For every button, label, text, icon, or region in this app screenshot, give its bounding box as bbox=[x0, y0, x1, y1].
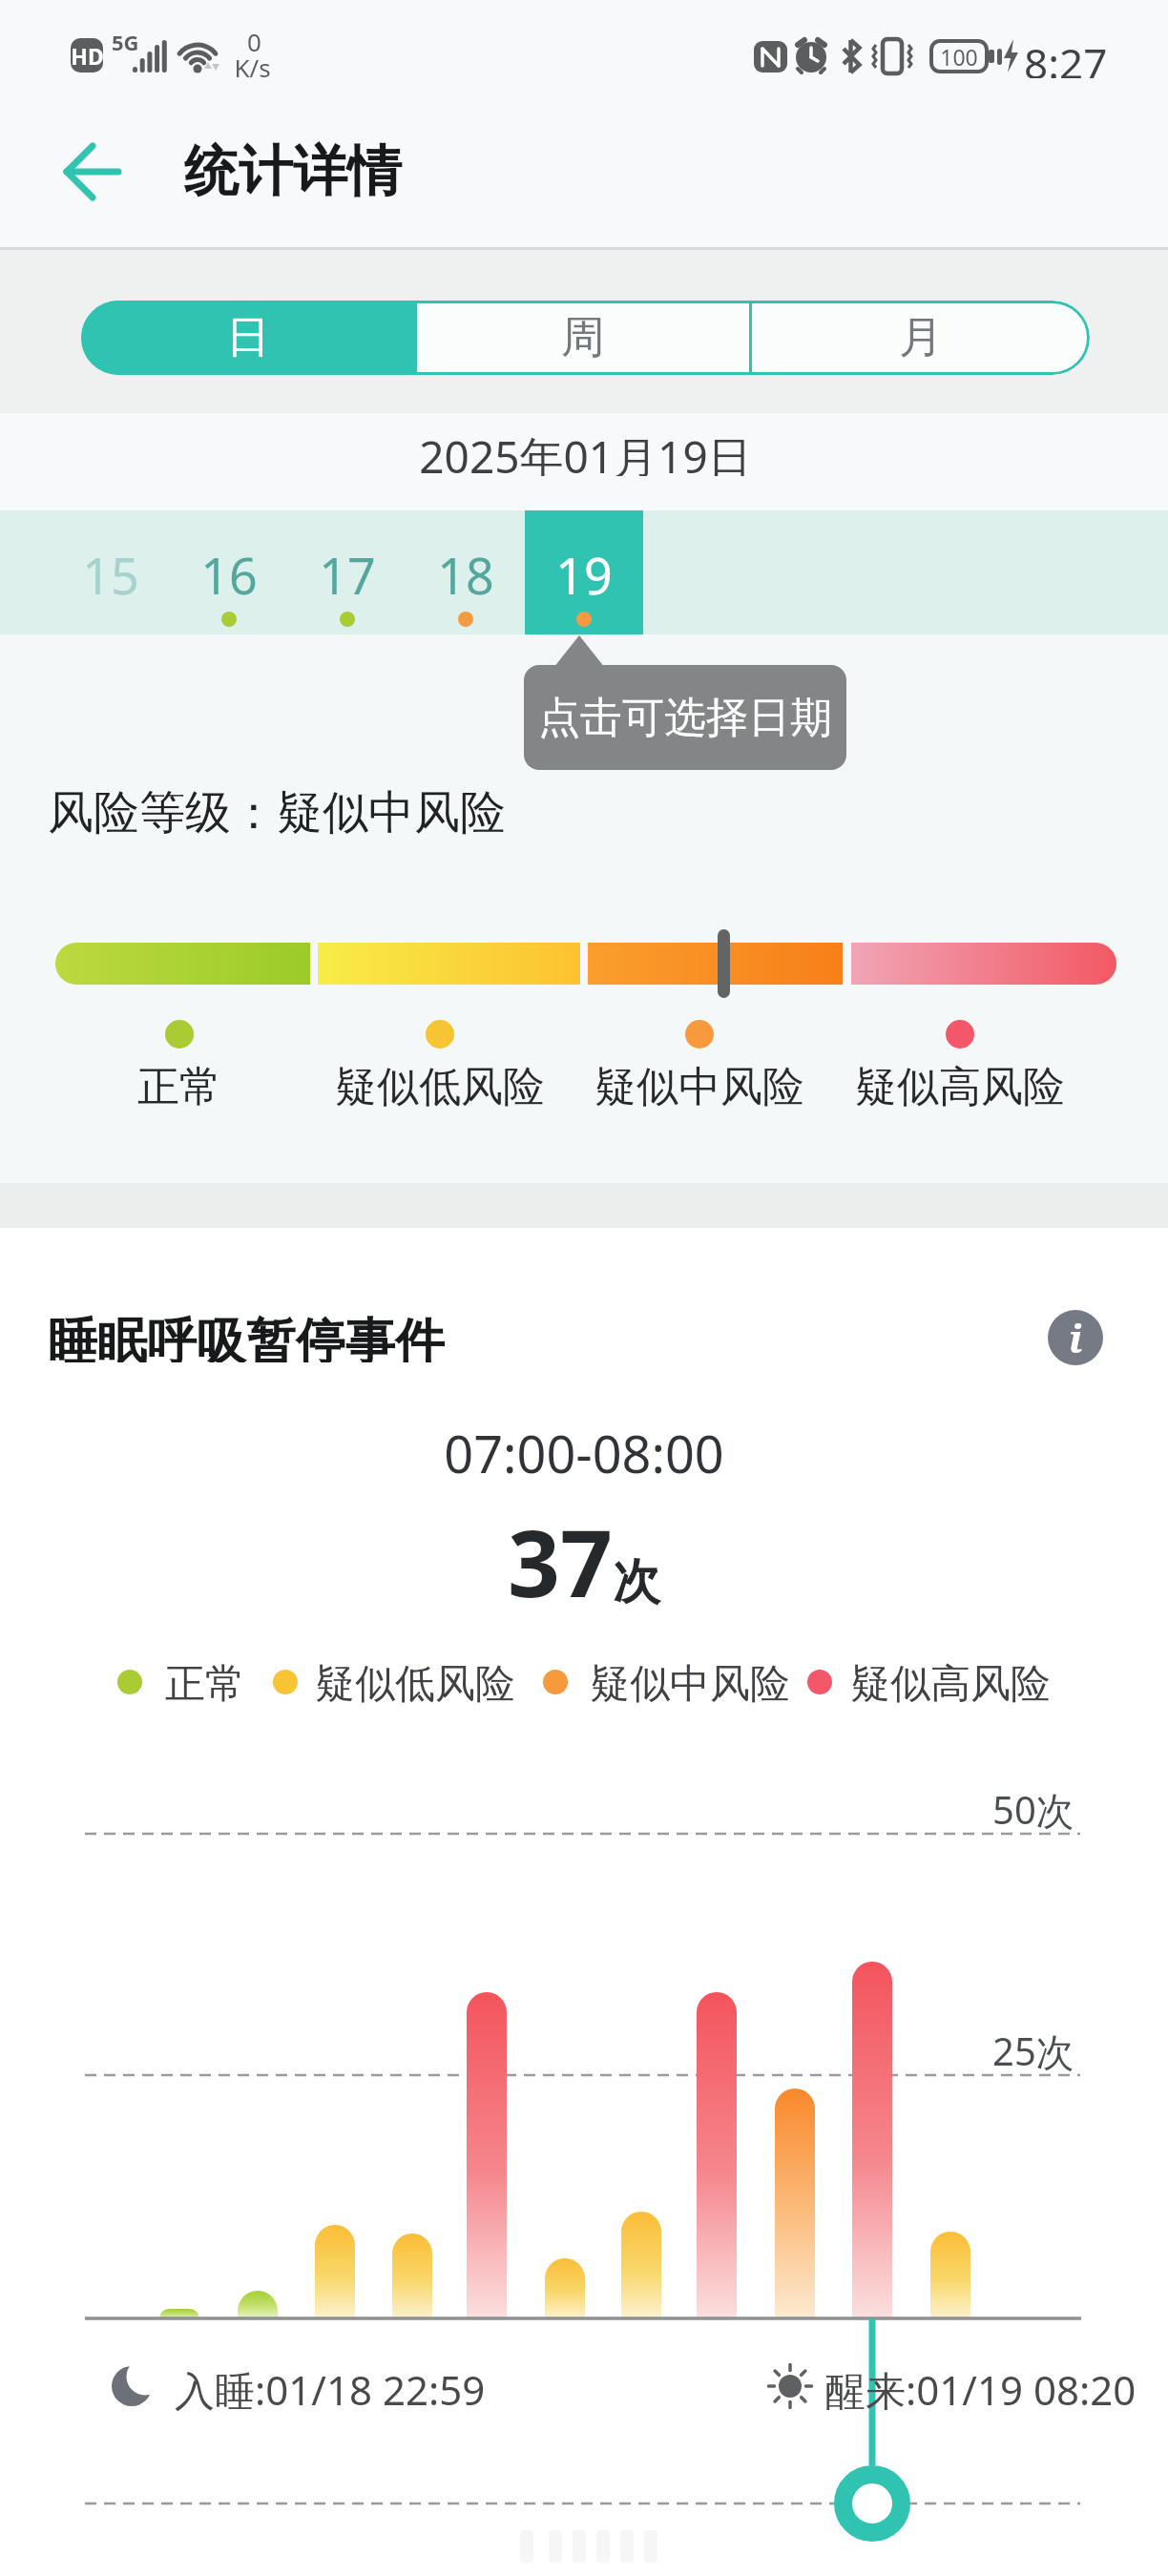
staticText: 统计详情 bbox=[184, 137, 402, 206]
staticText: 疑似低风险 bbox=[335, 1061, 545, 1111]
staticText: 19 bbox=[555, 541, 613, 609]
staticText: 07:00-08:00 bbox=[444, 1418, 724, 1488]
button[interactable] bbox=[81, 301, 415, 375]
button[interactable]: 点击可选择日期 bbox=[524, 665, 846, 770]
staticText: 2025年01月19日 bbox=[419, 426, 752, 476]
staticText: 100 bbox=[940, 42, 978, 71]
staticText: 50次 bbox=[992, 1783, 1074, 1831]
staticText: 16 bbox=[200, 541, 258, 609]
staticText: 17 bbox=[319, 541, 376, 609]
staticText: 正常 bbox=[137, 1061, 221, 1111]
staticText: 18 bbox=[437, 541, 494, 609]
staticText: 疑似中风险 bbox=[590, 1659, 790, 1709]
staticText: 疑似中风险 bbox=[594, 1061, 804, 1111]
staticText: HD bbox=[71, 41, 104, 71]
staticText: 周 bbox=[561, 310, 605, 365]
staticText: 15 bbox=[82, 541, 139, 609]
button[interactable]: 统计详情 bbox=[184, 132, 402, 212]
staticText: 疑似高风险 bbox=[855, 1061, 1065, 1111]
staticText: 8:27 bbox=[1024, 34, 1108, 78]
staticText: 正常 bbox=[165, 1659, 245, 1709]
staticText: 风险等级：疑似中风险 bbox=[48, 784, 506, 836]
staticText: 月 bbox=[899, 310, 943, 365]
staticText: 0 bbox=[247, 25, 261, 52]
staticText: 5G bbox=[112, 28, 139, 56]
staticText: 次 bbox=[613, 1552, 660, 1612]
button[interactable]: 月 bbox=[752, 301, 1090, 375]
button[interactable] bbox=[525, 510, 643, 634]
staticText: i bbox=[1069, 1312, 1083, 1363]
staticText: 疑似低风险 bbox=[315, 1659, 515, 1709]
staticText: 日 bbox=[226, 310, 270, 365]
staticText: 睡眠呼吸暂停事件 bbox=[48, 1311, 445, 1362]
staticText: 醒来:01/19 08:20 bbox=[825, 2362, 1137, 2412]
staticText: 25次 bbox=[992, 2025, 1074, 2072]
staticText: 37 bbox=[508, 1499, 613, 1624]
staticText: 疑似高风险 bbox=[850, 1659, 1051, 1709]
button[interactable] bbox=[46, 134, 141, 210]
staticText: 点击可选择日期 bbox=[538, 692, 832, 744]
staticText: K/s bbox=[234, 51, 271, 84]
button[interactable]: 周 bbox=[416, 301, 749, 375]
button[interactable]: i bbox=[1048, 1310, 1103, 1365]
staticText: 入睡:01/18 22:59 bbox=[175, 2362, 486, 2412]
